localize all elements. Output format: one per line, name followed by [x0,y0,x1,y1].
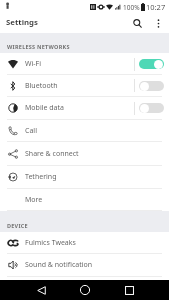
button[interactable]: Switch off [139,103,164,113]
button[interactable]: More options [147,14,169,33]
staticText: 100% [123,3,140,12]
staticText: WIRELESS NETWORKS [7,43,70,50]
staticText: Call [25,126,37,136]
button[interactable]: Home [68,280,102,300]
button[interactable]: Share & connect [0,142,169,165]
button[interactable]: Switch on [139,59,164,69]
button[interactable]: Search [127,14,147,33]
staticText: Sound & notification [25,260,93,270]
button[interactable]: Sound & notification [0,253,169,276]
button[interactable]: Wi-Fi [0,53,169,75]
button[interactable]: Back [24,280,58,300]
staticText: Share & connect [25,149,79,159]
button[interactable]: Tethering [0,165,169,188]
button[interactable]: Mobile data [0,97,169,119]
button[interactable]: Recent apps [112,280,146,300]
button[interactable]: Bluetooth [0,74,169,97]
staticText: Settings [6,17,38,28]
button[interactable]: More [0,188,169,211]
staticText: 10:27 [146,2,166,12]
button[interactable]: Switch off [139,81,164,91]
staticText: More [25,195,43,205]
button[interactable]: Fulmics Tweaks [0,232,169,253]
button[interactable]: Call [0,119,169,142]
staticText: Bluetooth [25,81,58,91]
staticText: Mobile data [25,103,64,113]
staticText: Wi-Fi [25,59,42,69]
staticText: Fulmics Tweaks [25,238,76,248]
staticText: Tethering [25,172,57,182]
staticText: DEVICE [7,222,28,229]
